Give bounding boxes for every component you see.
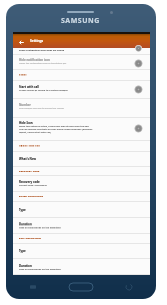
staticText: Current code: 4447300040 <box>19 184 47 187</box>
staticText: EXIT ANIMATION <box>19 237 42 240</box>
staticText: Show a notification while apps are locke… <box>19 49 65 52</box>
staticText: Hide Icon <box>19 121 33 125</box>
button[interactable]: Toggle <box>133 123 143 133</box>
button[interactable]: Duration <box>13 259 150 275</box>
staticText: ABOUT THIS APP <box>19 145 41 148</box>
staticText: Type <box>19 249 26 253</box>
staticText: Type <box>19 249 26 253</box>
staticText: Type <box>19 208 26 212</box>
button[interactable]: Hide notification icon <box>13 55 150 70</box>
staticText: Time in milliseconds for the animation <box>19 268 61 271</box>
staticText: ENTER ANIMATION <box>19 195 44 198</box>
staticText: Settings <box>30 39 44 43</box>
button[interactable]: Back <box>17 38 25 46</box>
staticText: Hide Icon <box>19 121 33 125</box>
staticText: START <box>19 74 27 77</box>
staticText: EXIT ANIMATION <box>19 237 42 240</box>
button[interactable]: Back <box>124 282 134 292</box>
staticText: Duration <box>19 223 32 227</box>
staticText: The number you dial to access the Locker <box>19 107 65 110</box>
button[interactable]: Type <box>13 202 150 218</box>
staticText: ENTER ANIMATION <box>19 195 44 198</box>
button[interactable]: Recovery code <box>13 176 150 192</box>
staticText: ABOUT THIS APP <box>19 144 41 147</box>
button[interactable]: Toggle <box>133 45 143 52</box>
staticText: When this option is active, Locker will … <box>19 125 90 128</box>
staticText: What's New <box>19 157 37 161</box>
staticText: Duration <box>19 264 32 268</box>
staticText: Number <box>19 103 31 107</box>
staticText: Recovery code <box>19 180 40 184</box>
staticText: Duration <box>19 222 32 226</box>
staticText: Number <box>19 103 31 107</box>
button[interactable]: Show a notification while apps are locke… <box>13 48 150 55</box>
staticText: Time in milliseconds for the animation <box>19 268 61 271</box>
staticText: Hide notification icon <box>19 58 50 62</box>
staticText: reboot, Forces Start with call) <box>19 131 52 134</box>
button[interactable]: Hide Icon <box>13 118 150 141</box>
button[interactable]: Number <box>13 99 150 118</box>
button[interactable]: Home <box>69 283 93 291</box>
button[interactable]: Duration <box>13 218 150 234</box>
staticText: Hides the notification icon in the statu… <box>19 62 67 65</box>
staticText: Access Locker by calling to a custom num… <box>19 89 68 92</box>
staticText: SAMSUNG <box>61 16 100 26</box>
staticText: Duration <box>19 264 32 268</box>
staticText: Hides the notification icon in the statu… <box>19 62 67 65</box>
staticText: You can remove shortcuts on your home sc… <box>19 128 93 131</box>
button[interactable]: What's New <box>13 152 150 167</box>
staticText: Time in milliseconds for the animation <box>19 227 61 230</box>
staticText: Recovery code <box>19 180 40 184</box>
staticText: Start with call <box>19 85 40 89</box>
button[interactable]: Type <box>13 244 150 259</box>
staticText: Current code: 4447300040 <box>19 184 47 187</box>
staticText: Show a notification while apps are locke… <box>19 49 65 52</box>
button[interactable]: Start with call <box>13 81 150 99</box>
staticText: The number you dial to access the Locker <box>19 107 65 110</box>
staticText: Time in milliseconds for the animation <box>19 226 61 229</box>
staticText: Start with call <box>19 85 40 89</box>
staticText: Access Locker by calling to a custom num… <box>19 89 68 92</box>
button[interactable]: Toggle <box>133 84 143 94</box>
staticText: What's New <box>19 157 37 161</box>
staticText: RECOVERY CODE <box>19 170 40 173</box>
staticText: You can remove shortcuts on your home sc… <box>19 128 93 131</box>
staticText: reboot, Forces Start with call) <box>19 131 52 134</box>
staticText: RECOVERY CODE <box>19 170 40 173</box>
staticText: Hide notification icon <box>19 58 50 62</box>
button[interactable]: Toggle <box>133 58 143 68</box>
staticText: START <box>19 73 27 76</box>
staticText: Type <box>19 208 26 212</box>
button[interactable]: Recent apps <box>28 282 38 292</box>
staticText: When this option is active, Locker will … <box>19 125 90 128</box>
